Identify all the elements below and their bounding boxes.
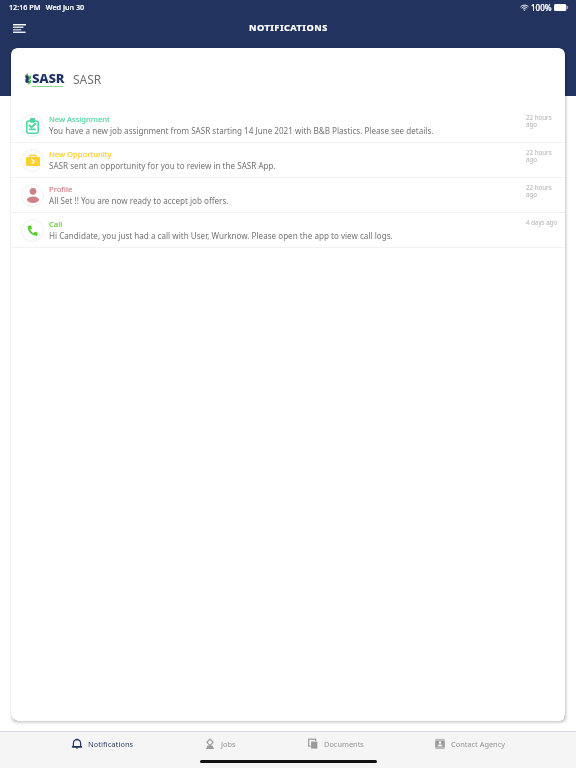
staticText: SASR xyxy=(32,69,65,87)
staticText: 4 days ago xyxy=(526,218,558,226)
button[interactable]: Profile xyxy=(11,178,565,213)
staticText: SASR xyxy=(73,71,102,87)
staticText: New Assignment xyxy=(49,114,110,124)
button[interactable]: Call xyxy=(11,213,565,248)
staticText: 100% xyxy=(531,2,552,13)
staticText: You have a new job assignment from SASR … xyxy=(49,125,434,136)
staticText: 22 hours ago xyxy=(526,148,560,164)
staticText: SASR sent an opportunity for you to revi… xyxy=(49,160,276,171)
staticText: 22 hours ago xyxy=(526,113,560,129)
staticText: Contact Agency xyxy=(451,739,505,749)
staticText: Call xyxy=(49,219,63,229)
button[interactable]: Jobs xyxy=(204,732,236,756)
staticText: 12:16 PM Wed Jun 30 xyxy=(9,2,85,12)
button[interactable]: Contact Agency xyxy=(434,732,505,756)
button[interactable]: New Opportunity xyxy=(11,143,565,178)
button[interactable]: Notifications xyxy=(71,732,134,756)
staticText: Hi Candidate, you just had a call with U… xyxy=(49,230,393,241)
staticText: NOTIFICATIONS xyxy=(249,21,328,34)
staticText: All Set !! You are now ready to accept j… xyxy=(49,195,229,206)
button[interactable]: Documents xyxy=(307,732,364,756)
button[interactable]: Menu xyxy=(7,16,31,40)
staticText: New Opportunity xyxy=(49,149,112,159)
staticText: Notifications xyxy=(88,739,134,749)
button[interactable]: New Assignment xyxy=(11,108,565,143)
staticText: 22 hours ago xyxy=(526,183,560,199)
staticText: Profile xyxy=(49,184,73,194)
staticText: Documents xyxy=(324,739,364,749)
staticText: Jobs xyxy=(221,739,236,749)
